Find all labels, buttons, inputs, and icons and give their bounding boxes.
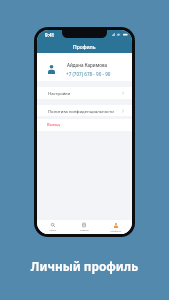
button[interactable]: Заявки: [68, 220, 100, 234]
staticText: Личный профиль: [0, 258, 169, 274]
button[interactable]: Настройки: [37, 87, 132, 99]
staticText: Настройки: [48, 90, 71, 96]
button[interactable]: Выход: [37, 119, 132, 131]
staticText: Поиск: [49, 228, 57, 231]
button[interactable]: Профиль: [100, 220, 132, 234]
staticText: +7 (707) 678 - 90 - 90: [66, 71, 111, 77]
button[interactable]: Айдана Каримова: [37, 53, 132, 81]
staticText: Профиль: [73, 44, 96, 51]
button[interactable]: Поиск: [37, 220, 68, 234]
staticText: Профиль: [110, 229, 122, 232]
staticText: Политика конфиденциальности: [48, 108, 114, 114]
staticText: 9:41: [45, 32, 55, 38]
staticText: Выход: [47, 122, 60, 128]
staticText: Заявки: [80, 228, 89, 231]
staticText: Айдана Каримова: [67, 62, 108, 68]
button[interactable]: Политика конфиденциальности: [37, 105, 132, 116]
